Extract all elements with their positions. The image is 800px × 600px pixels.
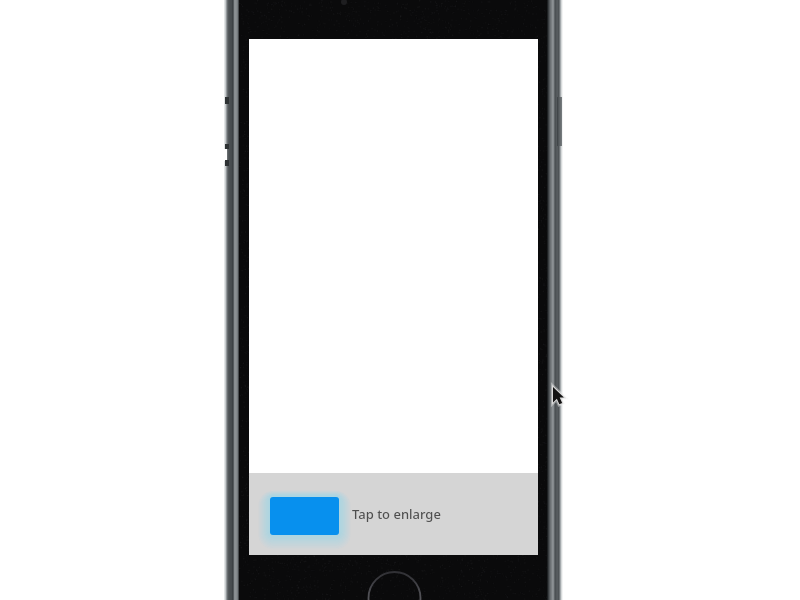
button[interactable]: Image thumbnail [249,473,538,555]
staticText: Tap to enlarge [352,505,441,523]
button[interactable]: Image thumbnail [259,484,350,544]
